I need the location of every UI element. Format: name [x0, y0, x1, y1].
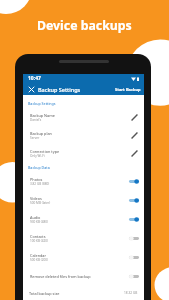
- staticText: Connection type: [30, 149, 60, 154]
- staticText: 930 KB (480): [30, 220, 49, 224]
- button[interactable]: Backup plan: [23, 126, 144, 144]
- staticText: Device backups: [37, 17, 132, 34]
- button[interactable]: Edit Connection type: [130, 149, 139, 158]
- staticText: Backup Data: [28, 165, 50, 170]
- staticText: Contacts: [30, 234, 46, 239]
- staticText: 18.32 GB: [124, 291, 138, 295]
- staticText: Only Wi-Fi: [30, 154, 45, 158]
- staticText: Total backup size: [29, 291, 60, 296]
- staticText: Server: [30, 136, 40, 140]
- staticText: Remove deleted files from backup: [30, 274, 91, 279]
- button[interactable]: Audio: [23, 210, 144, 229]
- staticText: Audio: [30, 215, 41, 220]
- staticText: Videos: [30, 196, 42, 201]
- staticText: Photos: [30, 177, 43, 182]
- button[interactable]: Close: [27, 85, 36, 94]
- button[interactable]: Connection type: [23, 144, 144, 162]
- staticText: 500 MB (later): [30, 201, 51, 205]
- staticText: Backup Name: [30, 113, 55, 118]
- staticText: Backup plan: [30, 131, 52, 136]
- button[interactable]: Backup Name: [23, 108, 144, 126]
- button[interactable]: Videos: [23, 191, 144, 210]
- staticText: Start Backup: [115, 87, 141, 92]
- button[interactable]: Remove deleted files from backup: [23, 267, 144, 286]
- staticText: 500 KB (200): [30, 258, 49, 262]
- button[interactable]: Edit Backup plan: [130, 131, 139, 140]
- button[interactable]: Contacts: [23, 229, 144, 248]
- staticText: Calendar: [30, 253, 47, 258]
- staticText: Backup Settings: [28, 101, 56, 106]
- button[interactable]: Calendar: [23, 248, 144, 267]
- button[interactable]: Photos: [23, 172, 144, 191]
- button[interactable]: Edit Backup Name: [130, 113, 139, 122]
- staticText: 10:47: [28, 75, 41, 82]
- staticText: Backup Settings: [38, 86, 81, 93]
- button[interactable]: Start Backup: [114, 85, 142, 94]
- staticText: Daniel's: [30, 118, 42, 122]
- staticText: 3.82 GB (880): [30, 182, 50, 186]
- staticText: 100 KB (420): [30, 239, 49, 243]
